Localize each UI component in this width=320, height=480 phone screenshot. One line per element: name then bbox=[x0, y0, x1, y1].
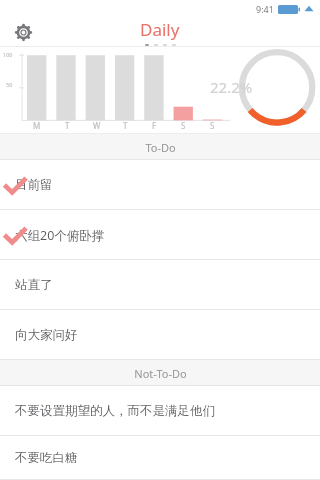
staticText: Not-To-Do bbox=[134, 366, 187, 381]
staticText: F bbox=[152, 120, 157, 131]
button[interactable]: 目前留 bbox=[0, 160, 320, 210]
staticText: To-Do bbox=[145, 140, 176, 155]
staticText: 不要吃白糖 bbox=[15, 450, 78, 466]
button[interactable]: Settings bbox=[10, 19, 36, 45]
button[interactable]: 不要吃白糖 bbox=[0, 436, 320, 480]
staticText: 22.2% bbox=[210, 77, 253, 97]
staticText: T bbox=[123, 120, 128, 131]
staticText: 不要设置期望的人，而不是满足他们 bbox=[15, 403, 215, 419]
staticText: T bbox=[65, 120, 70, 131]
staticText: 50 bbox=[6, 81, 13, 88]
staticText: Daily bbox=[140, 18, 180, 41]
staticText: S bbox=[210, 120, 215, 131]
staticText: W bbox=[93, 120, 101, 131]
staticText: S bbox=[181, 120, 186, 131]
button[interactable]: 站直了 bbox=[0, 260, 320, 310]
staticText: 100 bbox=[3, 51, 13, 58]
staticText: M bbox=[33, 120, 41, 131]
staticText: 站直了 bbox=[15, 277, 53, 293]
button[interactable]: 六组20个俯卧撑 bbox=[0, 210, 320, 260]
button[interactable]: 不要设置期望的人，而不是满足他们 bbox=[0, 386, 320, 436]
staticText: 向大家问好 bbox=[15, 327, 78, 343]
button[interactable]: 向大家问好 bbox=[0, 310, 320, 360]
staticText: 六组20个俯卧撑 bbox=[15, 227, 105, 244]
staticText: 9:41 bbox=[256, 3, 274, 15]
staticText: 目前留 bbox=[15, 177, 53, 193]
